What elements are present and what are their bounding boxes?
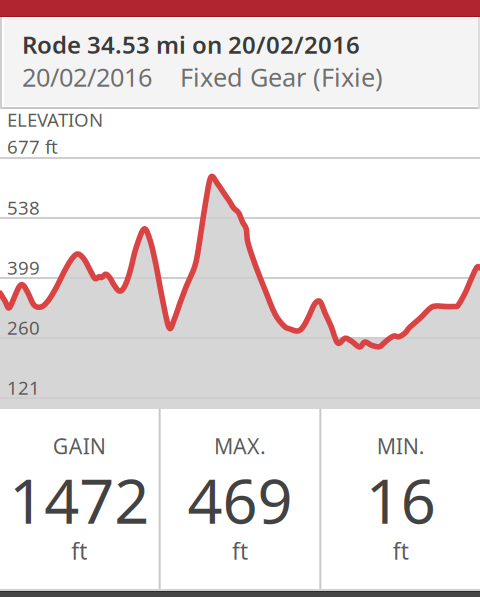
staticText: 16 (366, 459, 436, 541)
button[interactable]: GAIN (0, 409, 159, 589)
staticText: 677 ft (7, 134, 58, 159)
staticText: Rode 34.53 mi on 20/02/2016 (22, 29, 360, 60)
staticText: MIN. (377, 432, 425, 460)
staticText: 469 (187, 459, 292, 541)
staticText: ELEVATION (7, 107, 103, 132)
staticText: 538 (7, 195, 40, 220)
staticText: ft (71, 536, 87, 566)
button[interactable]: Rode 34.53 mi on 20/02/2016 (4, 18, 478, 106)
button[interactable]: MAX. (161, 409, 319, 589)
staticText: 1472 (9, 459, 149, 541)
staticText: GAIN (53, 432, 106, 460)
staticText: 121 (7, 375, 40, 400)
button[interactable]: MIN. (321, 409, 480, 589)
staticText: MAX. (214, 432, 266, 460)
staticText: ft (393, 536, 409, 566)
staticText: 399 (7, 255, 40, 280)
staticText: ft (232, 536, 248, 566)
staticText: 20/02/2016 Fixed Gear (Fixie) (22, 60, 383, 94)
staticText: 260 (7, 315, 40, 340)
